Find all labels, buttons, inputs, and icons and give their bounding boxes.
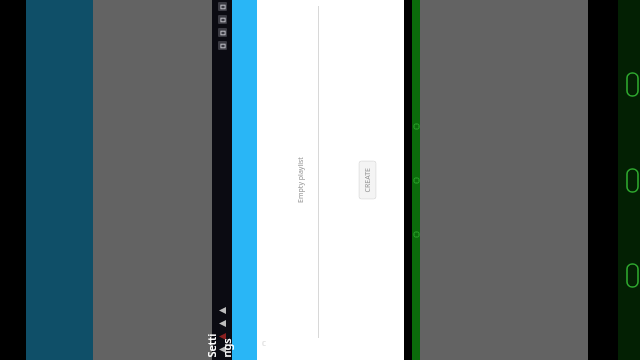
button[interactable]: Navigation [215,330,229,343]
other: Indicator [627,264,638,287]
staticText: Empty playlist [296,157,306,203]
other: Indicator [627,169,638,192]
button[interactable]: Navigation [215,317,229,330]
button[interactable]: Navigation [215,343,229,356]
staticText: c [262,337,266,348]
button[interactable]: CREATE [358,160,376,199]
button[interactable]: Settings [232,0,257,360]
staticText: Settings [203,332,233,357]
other: Indicator [627,73,638,96]
staticText: CREATE [362,167,372,192]
button[interactable]: Navigation [215,304,229,317]
